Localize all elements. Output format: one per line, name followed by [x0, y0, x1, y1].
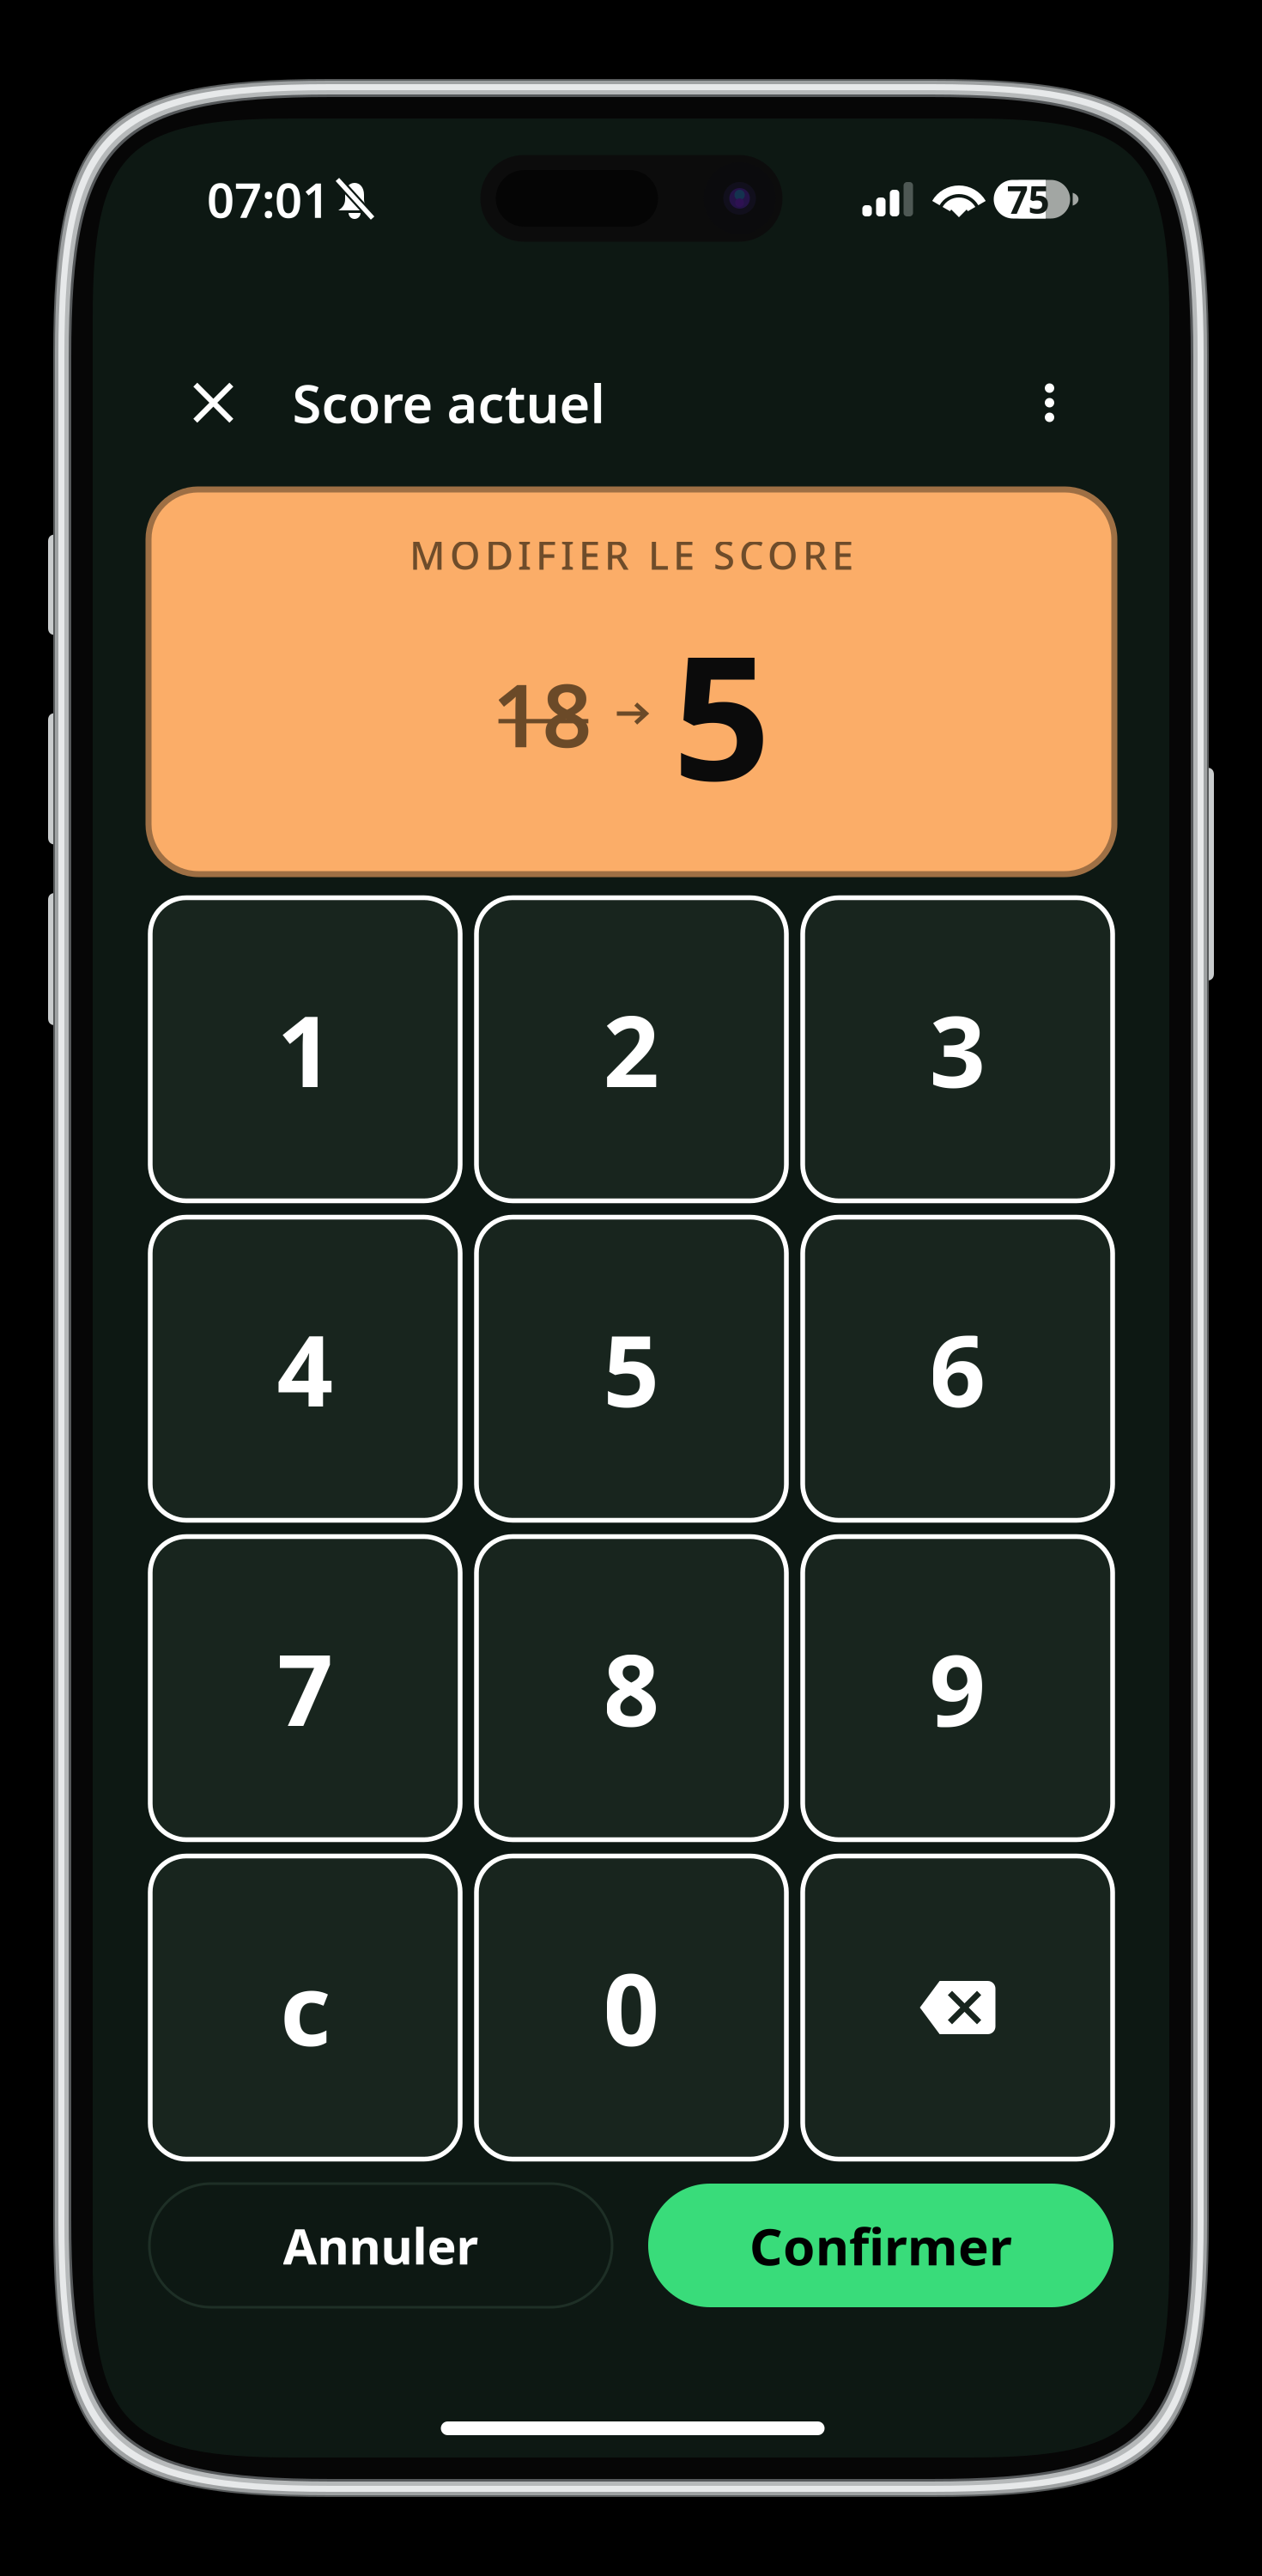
staticText: 7: [277, 1623, 334, 1754]
button[interactable]: 3: [803, 898, 1113, 1201]
button[interactable]: Annuler: [149, 2184, 612, 2307]
staticText: 1: [277, 984, 334, 1115]
button[interactable]: 5: [476, 1217, 786, 1520]
button[interactable]: Close: [182, 371, 245, 434]
button[interactable]: More options: [1018, 371, 1081, 434]
staticText: 4: [277, 1303, 334, 1434]
button[interactable]: c: [150, 1856, 460, 2159]
staticText: Score actuel: [292, 368, 605, 438]
button[interactable]: 2: [476, 898, 786, 1201]
button[interactable]: 1: [150, 898, 460, 1201]
button[interactable]: 8: [476, 1537, 786, 1840]
staticText: 9: [929, 1623, 986, 1754]
staticText: 5: [603, 1303, 660, 1434]
staticText: 8: [603, 1623, 660, 1754]
staticText: c: [280, 1942, 331, 2073]
button[interactable]: 0: [476, 1856, 786, 2159]
button[interactable]: 6: [803, 1217, 1113, 1520]
staticText: 6: [929, 1303, 986, 1434]
button[interactable]: 9: [803, 1537, 1113, 1840]
staticText: 0: [603, 1942, 660, 2073]
button[interactable]: 7: [150, 1537, 460, 1840]
button[interactable]: Delete: [803, 1856, 1113, 2159]
button[interactable]: Confirmer: [648, 2184, 1113, 2307]
staticText: 3: [929, 984, 986, 1115]
staticText: 5: [673, 600, 771, 828]
staticText: MODIFIER LE SCORE: [410, 529, 853, 581]
button[interactable]: 4: [150, 1217, 460, 1520]
staticText: Confirmer: [749, 2211, 1012, 2280]
staticText: 07:01: [207, 167, 330, 231]
staticText: Annuler: [283, 2213, 479, 2278]
staticText: 75: [1007, 174, 1050, 224]
staticText: 18: [492, 656, 592, 771]
staticText: 2: [603, 984, 660, 1115]
